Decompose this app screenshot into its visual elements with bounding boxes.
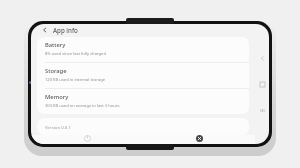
button[interactable]: Back [257, 53, 267, 63]
button[interactable]: Back [40, 25, 50, 35]
staticText: App info [53, 26, 78, 34]
button[interactable]: Force stop [143, 135, 255, 144]
button[interactable]: Recent apps [257, 105, 267, 115]
button[interactable]: Home [257, 79, 267, 89]
staticText: Battery [45, 41, 66, 49]
staticText: Storage [45, 67, 67, 75]
staticText: 120 KB used in internal storage [45, 77, 106, 83]
staticText: Memory [45, 93, 69, 101]
staticText: Version 0.0.1 [45, 124, 71, 130]
button[interactable]: Battery [37, 37, 249, 62]
button[interactable]: Version 0.0.1 [37, 118, 249, 135]
button[interactable]: Disable [31, 135, 143, 144]
staticText: 8% used since last fully charged [45, 51, 106, 57]
button[interactable]: Memory [37, 89, 249, 114]
button[interactable]: Storage [37, 63, 249, 88]
staticText: 303 KB used on average in last 3 hours [45, 103, 120, 109]
